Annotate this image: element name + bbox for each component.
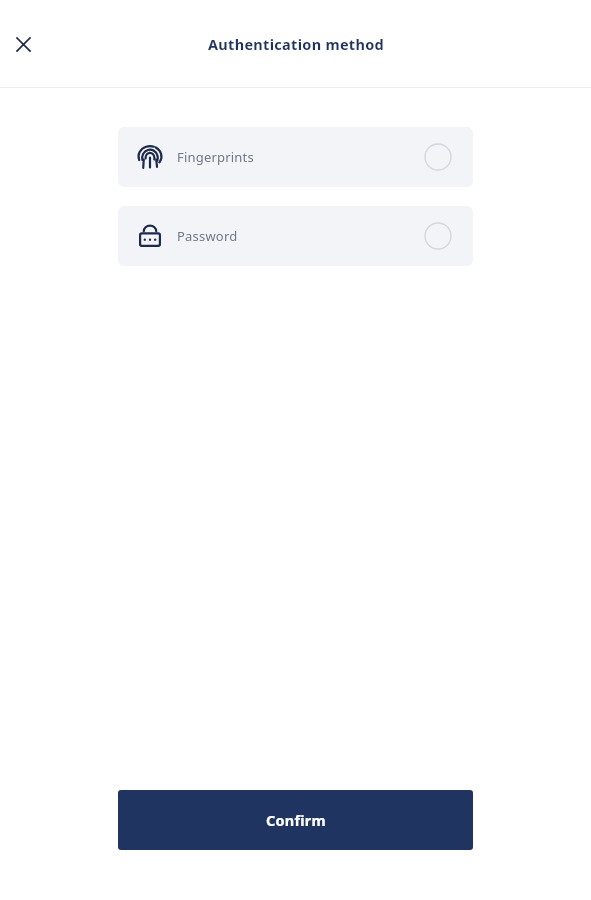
button[interactable]: Close (6, 27, 40, 61)
button[interactable]: Fingerprints (118, 127, 473, 187)
staticText: Password (177, 227, 238, 245)
staticText: Confirm (266, 810, 326, 830)
staticText: Authentication method (208, 34, 384, 54)
staticText: Fingerprints (177, 148, 254, 166)
button[interactable]: Confirm (118, 790, 473, 850)
button[interactable]: Password (118, 206, 473, 266)
